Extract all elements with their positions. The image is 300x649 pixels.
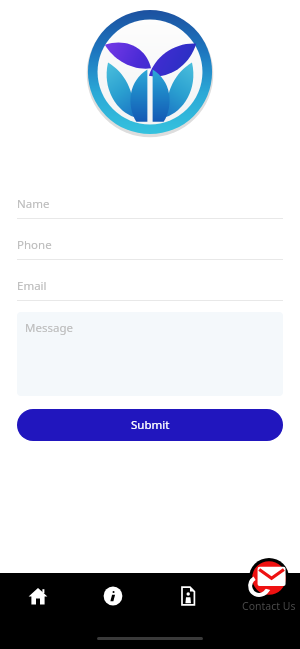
button[interactable]: Message [17, 312, 283, 396]
staticText: Submit [131, 417, 170, 433]
button[interactable]: Contact Us [237, 558, 300, 613]
other: Contact Us [249, 558, 289, 598]
button[interactable]: Phone [17, 237, 283, 260]
button[interactable]: Home [0, 573, 75, 619]
button[interactable]: Information [75, 573, 150, 619]
button[interactable]: Name [17, 196, 283, 219]
staticText: Message [25, 320, 73, 336]
staticText: Name [17, 196, 50, 212]
button[interactable]: Submit [17, 409, 283, 441]
staticText: Phone [17, 237, 52, 253]
staticText: Email [17, 278, 47, 294]
button[interactable]: Email [17, 278, 283, 301]
staticText: Contact Us [242, 599, 296, 613]
button[interactable]: Profile document [150, 573, 225, 619]
